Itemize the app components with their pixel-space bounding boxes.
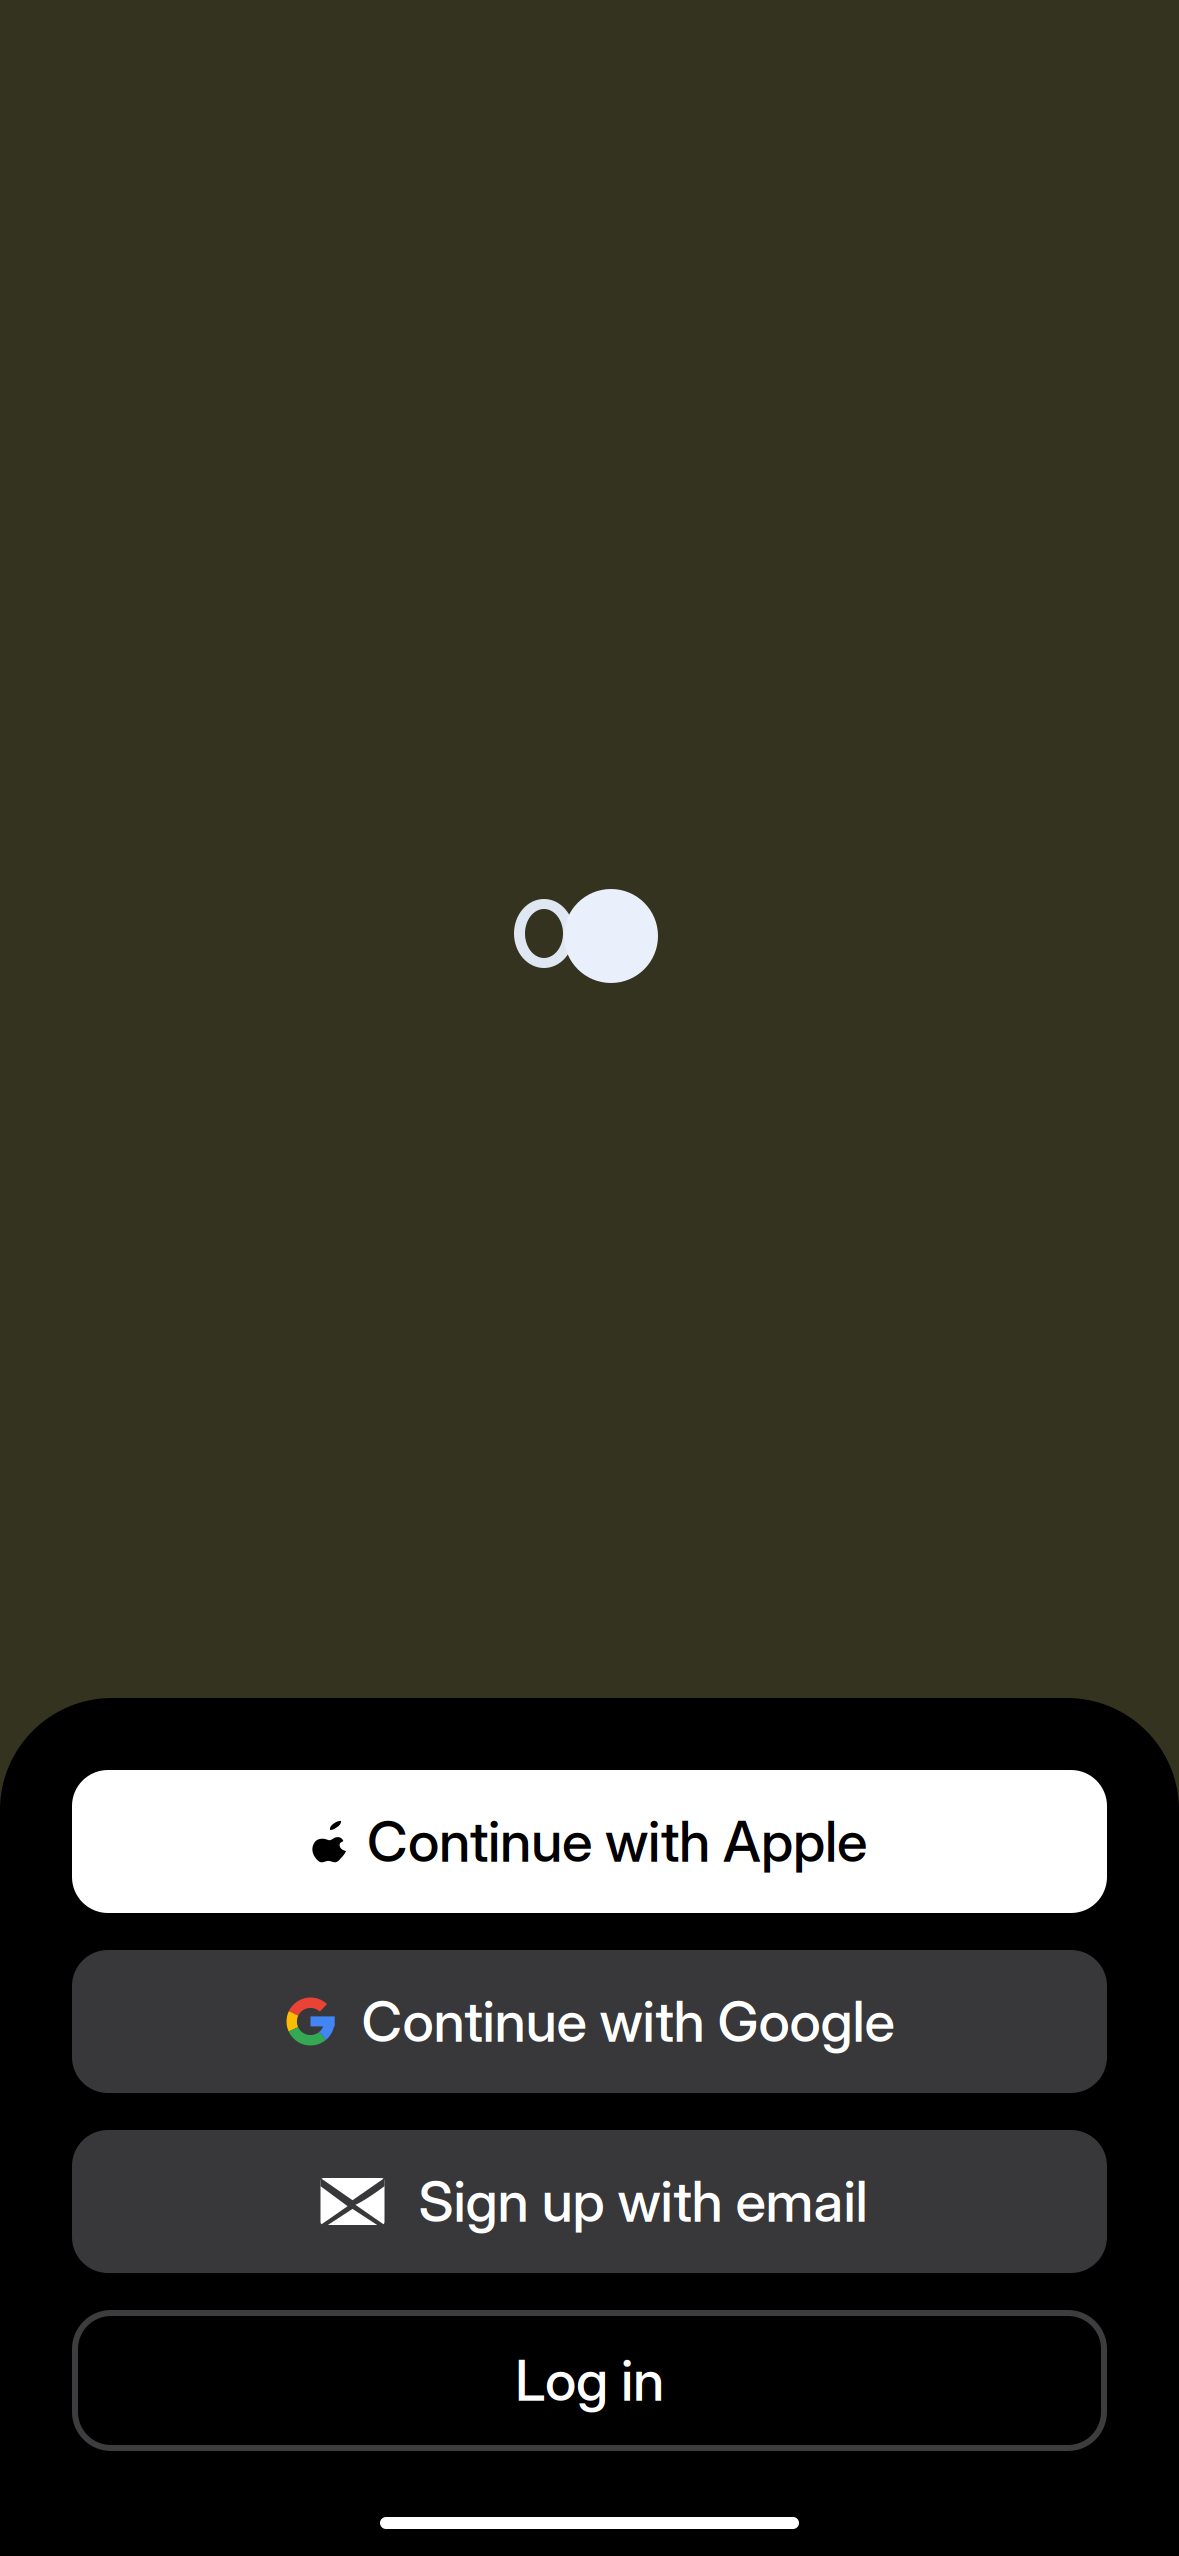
- staticText: Log in: [515, 2347, 664, 2414]
- staticText: Sign up with email: [418, 2168, 867, 2235]
- staticText: Continue with Google: [361, 1988, 894, 2055]
- button[interactable]: Continue with Google: [72, 1950, 1107, 2093]
- button[interactable]: Sign up with email: [72, 2130, 1107, 2273]
- staticText: Continue with Apple: [367, 1808, 867, 1875]
- button[interactable]: Continue with Apple: [72, 1770, 1107, 1913]
- button[interactable]: Log in: [72, 2310, 1107, 2451]
